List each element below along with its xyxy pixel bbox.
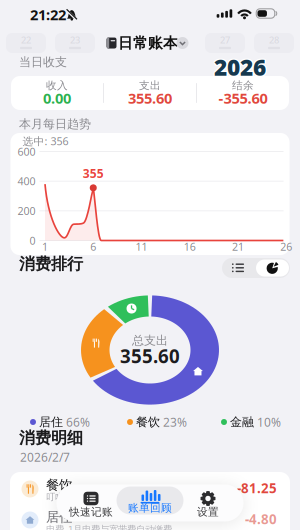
staticText: 28 [269,34,279,46]
staticText: 1 [42,239,48,254]
staticText: 11 [135,239,147,254]
staticText: 355.60 [120,344,180,368]
staticText: 27 [220,34,230,46]
staticText: 电费 1月电费与宽带费自动缴费 [46,523,172,530]
staticText: 21 [232,239,244,254]
staticText: 收入 [46,79,68,92]
button[interactable]: 居住 [10,506,290,530]
staticText: 66% [66,414,90,430]
staticText: 2026 [213,52,265,82]
staticText: 居住 [46,509,72,525]
staticText: 355.60 [128,88,172,108]
button[interactable]: 餐饮 [10,472,290,506]
staticText: -81.25 [237,479,277,497]
staticText: 本月每日趋势 [19,117,91,131]
staticText: -4.80 [245,510,277,528]
staticText: 600 [17,144,35,159]
button[interactable]: 设置 [179,484,237,521]
staticText: 2026 [213,51,265,81]
staticText: 355 [83,165,104,181]
staticText: 21:22 [30,5,66,24]
staticText: 金融 [230,415,254,429]
staticText: 2026 [215,53,267,83]
staticText: 结余 [232,79,254,92]
staticText: 快速记账 [69,505,113,518]
staticText: 2026 [215,52,267,82]
button[interactable]: 快速记账 [57,484,124,521]
staticText: 0 [29,233,35,248]
staticText: 26 [280,239,292,254]
staticText: 200 [17,204,35,218]
staticText: 2026 [214,53,266,83]
staticText: 400 [17,174,35,188]
staticText: 账单回顾 [128,501,172,514]
staticText: 餐饮 [136,415,160,429]
staticText: 叮咚买菜・晚餐食材 [46,491,127,503]
staticText: 23 [70,34,80,46]
staticText: -355.60 [218,88,267,108]
button[interactable]: 列表视图 [222,258,254,278]
button[interactable]: 账本选择 [75,31,225,55]
staticText: 选中: 356 [22,134,68,148]
button[interactable]: 账单回顾 [116,486,183,514]
staticText: 22 [21,34,31,46]
staticText: 2026 [213,53,265,83]
staticText: 16 [184,239,196,254]
staticText: 2026 [215,51,267,81]
staticText: 10% [257,414,281,430]
staticText: 消费明细 [19,428,83,448]
staticText: 总支出 [132,333,168,348]
staticText: 消费排行 [19,254,83,274]
staticText: 23% [163,414,187,430]
staticText: 2026 [214,52,266,82]
staticText: 当日收支 [19,55,67,69]
staticText: 餐饮 [46,477,72,493]
staticText: 0.00 [43,88,71,108]
staticText: 日常账本 [118,34,178,52]
staticText: 居住 [39,415,63,429]
button[interactable]: 图表视图 [256,259,289,276]
staticText: 设置 [197,505,219,518]
staticText: 2026 [214,51,266,81]
staticText: 支出 [139,79,161,92]
staticText: 6 [90,239,96,254]
staticText: 2026/2/7 [20,449,70,465]
